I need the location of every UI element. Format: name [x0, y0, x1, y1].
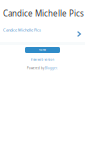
staticText: Candice Michelle Pics — [3, 27, 41, 33]
button[interactable]: Home — [25, 47, 60, 53]
staticText: Candice Michelle Pics — [3, 8, 84, 19]
staticText: View web version — [30, 58, 54, 61]
staticText: Powered by — [27, 66, 44, 70]
button[interactable]: Blogger. — [45, 66, 58, 70]
button[interactable]: View web version — [30, 58, 54, 61]
staticText: Blogger. — [45, 66, 58, 70]
button[interactable]: Candice Michelle Pics — [0, 23, 85, 37]
staticText: Home — [38, 48, 46, 52]
